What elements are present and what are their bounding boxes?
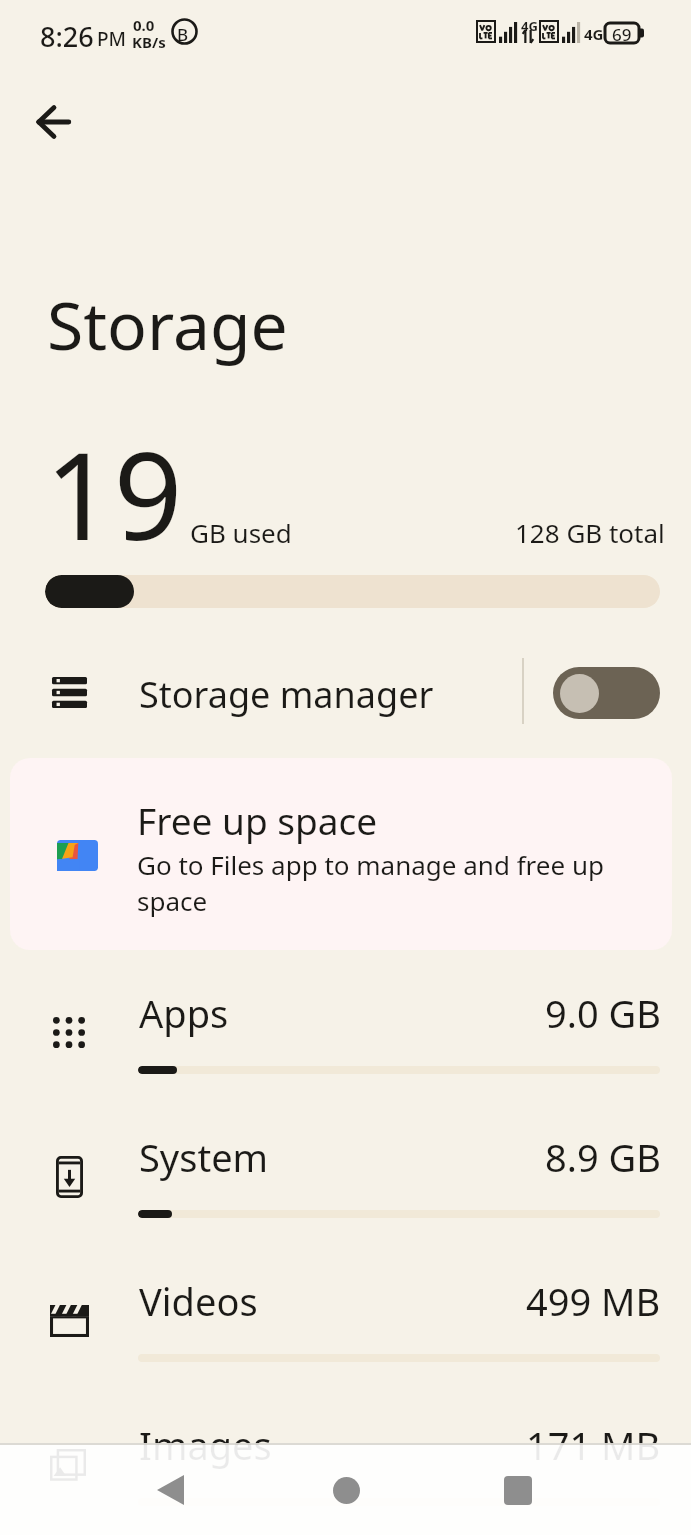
staticText: 9.0 GB [545, 987, 661, 1039]
staticText: 8.9 GB [545, 1131, 661, 1183]
staticText: KB/s [132, 32, 166, 52]
button[interactable]: Recents [468, 1443, 568, 1535]
button[interactable]: Home [296, 1443, 396, 1535]
staticText: Storage [47, 279, 288, 369]
staticText: 69 [612, 23, 632, 43]
staticText: Storage manager [139, 670, 434, 719]
staticText: 499 MB [526, 1275, 661, 1327]
staticText: System [139, 1131, 269, 1183]
button[interactable]: Free up space [10, 758, 672, 950]
staticText: PM [97, 26, 127, 52]
staticText: Go to Files app to manage and free up sp… [137, 847, 604, 919]
button[interactable]: Apps [0, 962, 691, 1106]
button[interactable]: Navigate back [120, 1443, 220, 1535]
button[interactable]: Storage manager toggle [553, 667, 660, 719]
staticText: B [177, 23, 189, 46]
staticText: 4G [584, 24, 604, 44]
button[interactable]: Storage manager [0, 646, 691, 740]
button[interactable]: Back [16, 84, 92, 160]
staticText: Apps [139, 987, 229, 1039]
staticText: 19 [45, 412, 183, 575]
staticText: Videos [139, 1275, 258, 1327]
button[interactable]: Images [0, 1394, 691, 1535]
staticText: 171 MB [526, 1419, 661, 1471]
staticText: 8:26 [40, 18, 94, 55]
staticText: 4G [521, 17, 538, 35]
staticText: 0.0 [133, 15, 155, 35]
button[interactable]: Videos [0, 1250, 691, 1394]
staticText: GB used [190, 515, 292, 550]
staticText: Images [139, 1419, 272, 1471]
button[interactable]: System [0, 1106, 691, 1250]
staticText: Free up space [137, 795, 378, 845]
staticText: 128 GB total [515, 515, 665, 550]
